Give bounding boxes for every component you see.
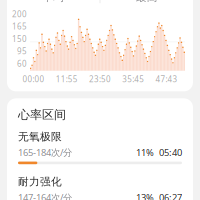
staticText: 00:00 xyxy=(23,74,45,84)
staticText: 35:45 xyxy=(122,74,144,84)
staticText: 165 xyxy=(12,21,27,32)
staticText: 心率区间 xyxy=(18,107,66,122)
staticText: 150 xyxy=(12,33,27,44)
staticText: 无氧极限 xyxy=(18,130,62,143)
staticText: 耐力强化 xyxy=(18,175,62,188)
staticText: 165-184次/分 xyxy=(18,146,72,159)
staticText: 11% xyxy=(136,146,154,159)
staticText: 13% xyxy=(136,191,154,200)
staticText: 最高 xyxy=(136,0,158,4)
staticText: 11:55 xyxy=(56,74,78,84)
staticText: 60 xyxy=(17,58,27,69)
button[interactable]: 无氧极限 xyxy=(18,130,182,164)
staticText: 95 xyxy=(17,46,27,56)
staticText: 06:27 xyxy=(159,191,182,200)
staticText: 147-164次/分 xyxy=(18,191,72,200)
staticText: 47:43 xyxy=(155,74,177,84)
button[interactable]: 耐力强化 xyxy=(18,175,182,200)
staticText: 23:50 xyxy=(89,74,111,84)
staticText: 05:40 xyxy=(159,146,182,159)
staticText: 200 xyxy=(12,9,27,19)
staticText: 平均 xyxy=(42,0,64,4)
